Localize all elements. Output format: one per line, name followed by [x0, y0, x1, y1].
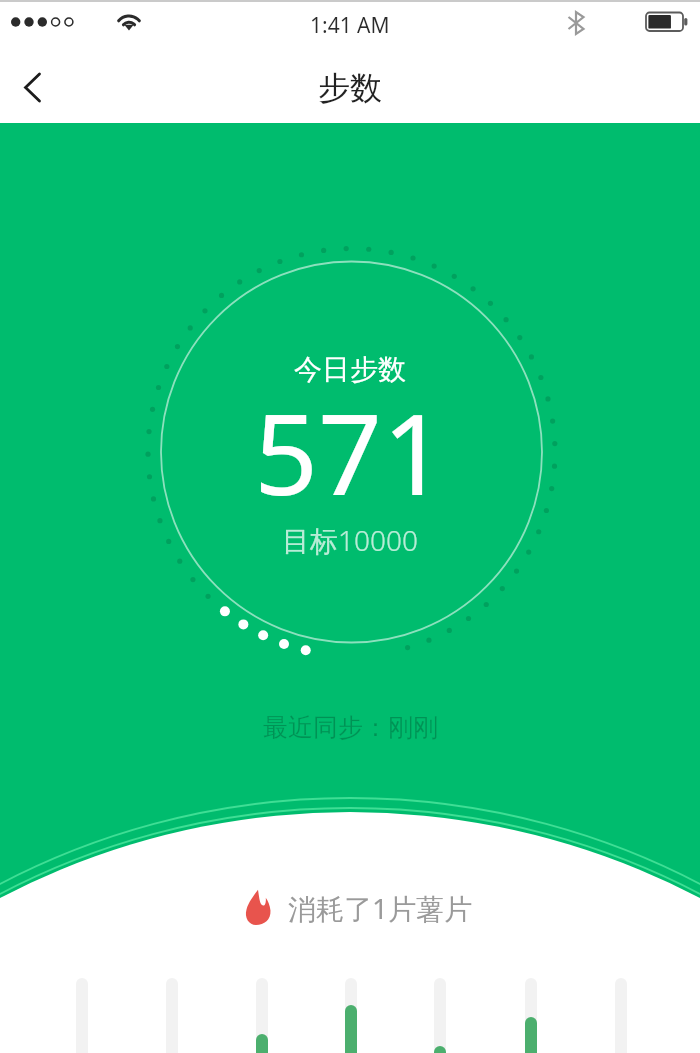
button[interactable]: Weekly step chart — [0, 968, 700, 1053]
button[interactable]: Today's steps 571 of 10000 — [141, 242, 561, 662]
button[interactable]: 消耗了1片薯片 — [245, 889, 473, 927]
staticText: 571 — [254, 375, 447, 528]
staticText: 1:41 AM — [310, 11, 390, 40]
staticText: 目标10000 — [282, 521, 418, 559]
staticText: 今日步数 — [294, 352, 406, 387]
staticText: 消耗了1片薯片 — [288, 889, 473, 927]
button[interactable]: Back — [0, 50, 70, 120]
staticText: 步数 — [318, 68, 382, 108]
staticText: 最近同步：刚刚 — [263, 712, 438, 743]
